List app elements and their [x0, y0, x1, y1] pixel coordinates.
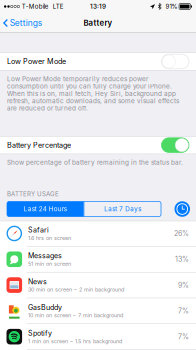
staticText: 13:19 [90, 3, 106, 10]
staticText: GasBuddy [28, 303, 62, 312]
button[interactable]: Show battery usage by time [174, 201, 190, 217]
staticText: Battery [83, 18, 112, 28]
staticText: T-Mobile [22, 3, 49, 10]
staticText: Spotify [28, 329, 52, 337]
staticText: Last 24 Hours [24, 205, 67, 213]
button[interactable]: Settings [0, 15, 42, 31]
staticText: 13% [175, 255, 189, 263]
button[interactable]: Battery Percentage [0, 136, 196, 154]
button[interactable]: Low Power Mode [0, 52, 196, 70]
staticText: 1.6 hrs on screen [28, 235, 71, 241]
staticText: Settings [10, 18, 42, 28]
staticText: 91% [165, 3, 177, 10]
staticText: 10 min on screen – 7 min background [28, 312, 123, 319]
staticText: 30 min on screen – 2 min background [28, 286, 124, 293]
staticText: Show percentage of battery remaining in … [7, 159, 183, 166]
button[interactable]: Safari [0, 221, 196, 246]
staticText: BATTERY USAGE [7, 190, 59, 198]
staticText: 26% [174, 229, 189, 238]
staticText: Messages [28, 251, 62, 260]
staticText: Low Power Mode temporarily reduces power… [7, 75, 179, 112]
staticText: 7% [178, 332, 189, 341]
staticText: 7% [178, 307, 189, 315]
staticText: 1 min on screen – 1.5 hrs background [28, 338, 122, 344]
button[interactable]: Last 24 Hours [7, 201, 84, 216]
button[interactable]: GasBuddy [0, 298, 196, 324]
staticText: LTE [49, 3, 64, 10]
staticText: 9% [178, 281, 189, 289]
button[interactable]: News [0, 272, 196, 298]
staticText: 51 min on screen [28, 260, 71, 267]
staticText: Battery Percentage [7, 141, 71, 149]
staticText: Last 7 Days [104, 205, 141, 213]
button[interactable]: Last 7 Days [84, 201, 161, 216]
staticText: Low Power Mode [7, 57, 66, 66]
button[interactable]: Spotify [0, 324, 196, 349]
staticText: Safari [28, 226, 49, 234]
button[interactable]: Messages [0, 247, 196, 272]
staticText: News [28, 277, 47, 286]
